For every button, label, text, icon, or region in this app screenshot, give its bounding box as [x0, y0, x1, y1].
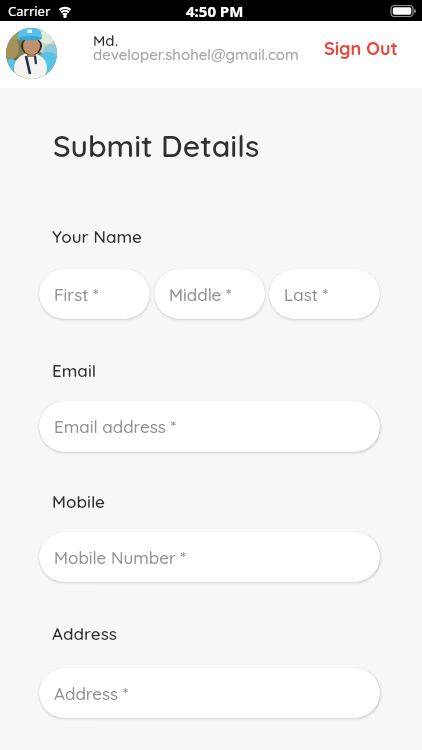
staticText: Email address * — [54, 416, 177, 437]
staticText: Mobile — [52, 491, 106, 512]
button[interactable] — [6, 28, 57, 79]
staticText: Your Name — [52, 226, 142, 247]
staticText: Last * — [284, 284, 329, 305]
staticText: Address * — [54, 683, 129, 704]
button[interactable]: First * — [39, 269, 150, 319]
staticText: Sign Out — [324, 37, 398, 60]
staticText: Middle * — [169, 284, 232, 305]
button[interactable]: Middle * — [154, 269, 265, 319]
button[interactable]: Email address * — [39, 401, 380, 452]
staticText: developer.shohel@gmail.com — [93, 45, 299, 64]
staticText: Carrier — [8, 2, 51, 20]
staticText: 4:50 PM — [186, 1, 244, 21]
staticText: Address — [52, 623, 117, 644]
staticText: Email — [52, 360, 97, 381]
button[interactable]: Last * — [269, 269, 380, 319]
button[interactable]: Mobile Number * — [39, 532, 380, 582]
button[interactable]: Address * — [39, 668, 380, 718]
staticText: Submit Details — [53, 127, 260, 165]
staticText: Md. — [93, 31, 119, 50]
staticText: Mobile Number * — [54, 547, 186, 568]
staticText: First * — [54, 284, 99, 305]
button[interactable]: Sign Out — [318, 31, 404, 66]
